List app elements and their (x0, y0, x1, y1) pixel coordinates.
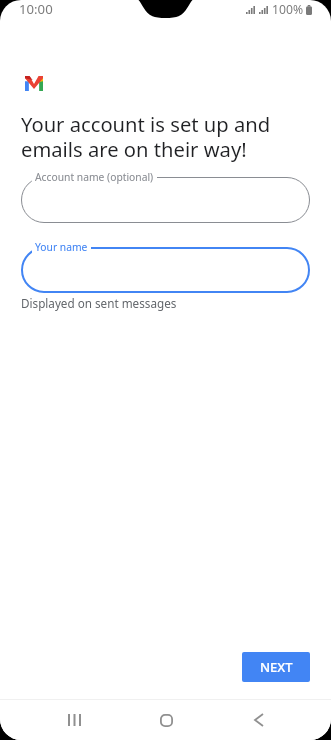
staticText: Displayed on sent messages (21, 295, 177, 311)
button[interactable]: Back (241, 700, 277, 740)
staticText: Your name (35, 240, 88, 254)
button[interactable]: NEXT (242, 652, 310, 682)
button[interactable]: Home (148, 700, 184, 740)
staticText: 10:00 (19, 0, 53, 18)
staticText: NEXT (260, 658, 293, 676)
staticText: emails are on their way! (21, 135, 247, 163)
button[interactable]: Recent apps (56, 700, 92, 740)
staticText: Your account is set up and (21, 110, 271, 138)
staticText: 100% (272, 1, 304, 18)
button[interactable]: Account name (optional) (21, 177, 310, 223)
staticText: Account name (optional) (35, 170, 154, 184)
button[interactable]: Your name (21, 247, 310, 293)
